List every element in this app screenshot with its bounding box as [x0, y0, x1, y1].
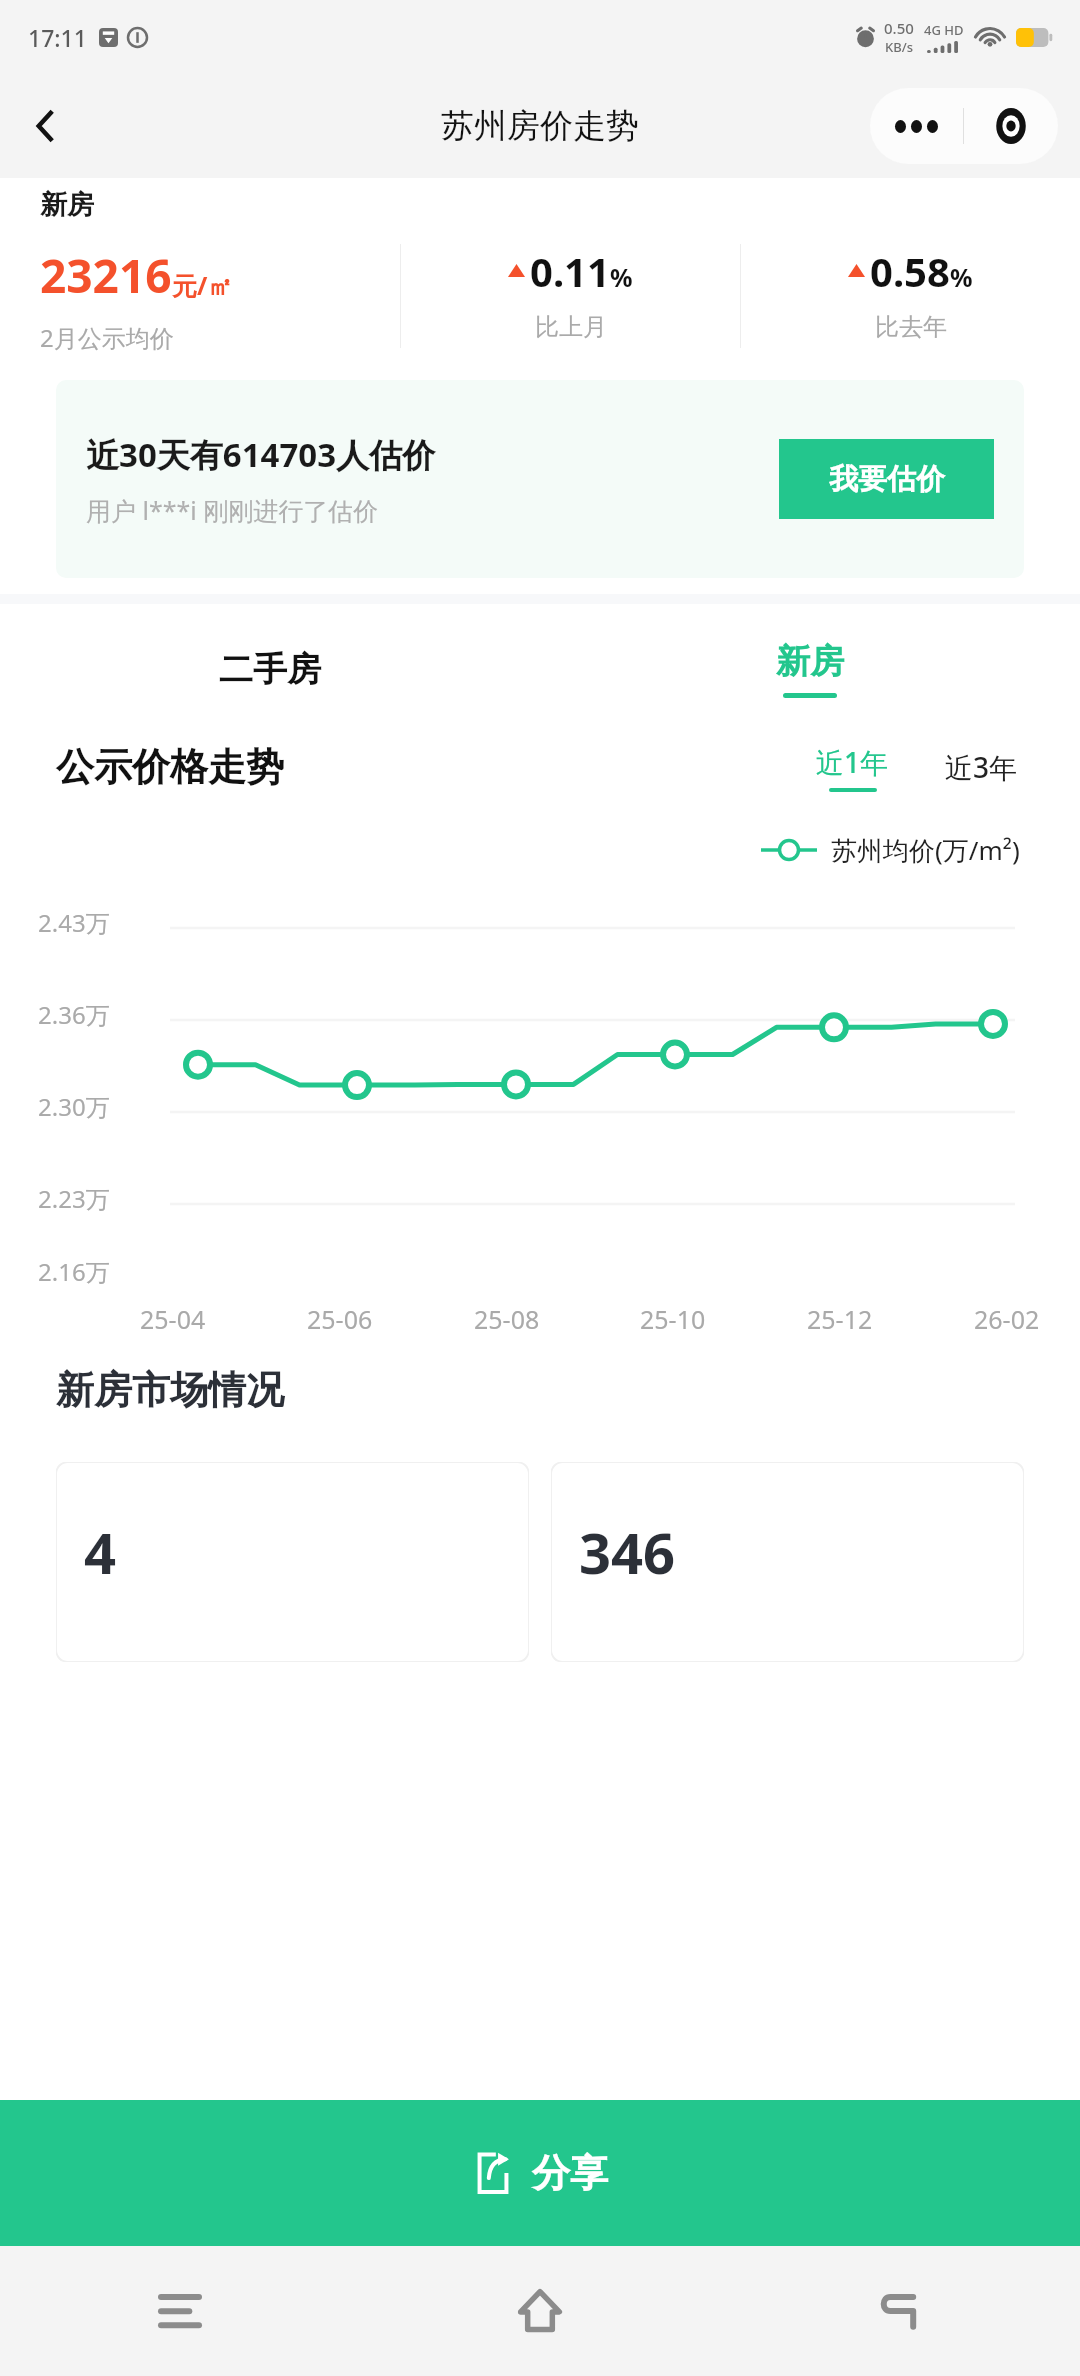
staticText: 2.23万: [38, 1182, 110, 1215]
staticText: 25-04: [140, 1302, 206, 1336]
staticText: 近30天有614703人估价: [86, 432, 436, 477]
staticText: 二手房: [219, 648, 321, 691]
staticText: 苏州房价走势: [441, 105, 639, 147]
button[interactable]: Home: [360, 2246, 720, 2376]
staticText: 比去年: [875, 312, 947, 342]
staticText: 346: [579, 1514, 676, 1590]
staticText: 2.43万: [38, 906, 110, 939]
staticText: 2.36万: [38, 998, 110, 1031]
staticText: 比上月: [535, 312, 607, 342]
staticText: 苏州均价(万/m²): [831, 832, 1020, 868]
staticText: 0.58: [870, 244, 950, 298]
button[interactable]: Back: [720, 2246, 1080, 2376]
button[interactable]: 新房: [540, 614, 1080, 724]
staticText: 26-02: [974, 1302, 1040, 1336]
staticText: 17:11: [28, 22, 87, 53]
staticText: %: [950, 260, 973, 294]
staticText: 25-08: [474, 1302, 540, 1336]
staticText: 0.11: [530, 244, 610, 298]
button[interactable]: 我要估价: [779, 439, 994, 519]
button[interactable]: 近1年: [810, 743, 895, 792]
staticText: 近1年: [816, 743, 889, 781]
staticText: 23216: [40, 244, 172, 307]
staticText: 4G HD: [924, 21, 964, 39]
button[interactable]: 二手房: [0, 614, 540, 724]
staticText: 25-12: [807, 1302, 873, 1336]
button[interactable]: Recent apps: [0, 2246, 360, 2376]
button[interactable]: Back: [18, 98, 74, 154]
button[interactable]: 分享: [0, 2100, 1080, 2246]
staticText: KB/s: [885, 38, 914, 56]
button[interactable]: Close: [964, 88, 1058, 164]
staticText: 元/㎡: [172, 268, 233, 302]
staticText: 2.16万: [38, 1255, 110, 1288]
staticText: 我要估价: [829, 461, 945, 498]
staticText: 公示价格走势: [56, 743, 284, 791]
staticText: %: [610, 260, 633, 294]
staticText: 2.30万: [38, 1090, 110, 1123]
staticText: 新房: [40, 188, 94, 222]
staticText: 近3年: [945, 748, 1018, 786]
staticText: 25-06: [307, 1302, 373, 1336]
button[interactable]: 近3年: [939, 740, 1024, 794]
button[interactable]: 346: [551, 1462, 1024, 1662]
staticText: 25-10: [640, 1302, 706, 1336]
staticText: 新房: [776, 640, 844, 683]
staticText: 4: [84, 1514, 117, 1590]
button[interactable]: 近30天有614703人估价: [56, 380, 1024, 578]
staticText: 用户 l***i 刚刚进行了估价: [86, 493, 379, 527]
staticText: 2月公示均价: [40, 321, 174, 354]
button[interactable]: More options: [870, 88, 963, 164]
staticText: 新房市场情况: [56, 1366, 284, 1414]
staticText: 分享: [532, 2149, 608, 2197]
staticText: 0.50: [884, 18, 914, 38]
button[interactable]: 4: [56, 1462, 529, 1662]
